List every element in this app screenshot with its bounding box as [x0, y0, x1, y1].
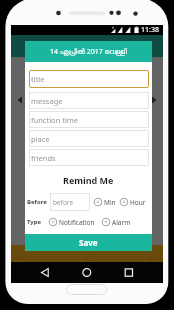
- staticText: Remind Me: [63, 174, 114, 186]
- staticText: title: [31, 74, 45, 84]
- staticText: message: [31, 96, 63, 106]
- button[interactable]: title: [29, 70, 149, 88]
- staticText: 14 ഏപ്രിൽ 2017 വെള്ളി: [50, 47, 127, 57]
- button[interactable]: Min: [93, 197, 116, 207]
- staticText: Notification: [59, 218, 95, 227]
- button[interactable]: Home button: [66, 284, 107, 295]
- button[interactable]: Save: [25, 234, 152, 251]
- button[interactable]: place: [29, 130, 149, 147]
- button[interactable]: Hour: [119, 197, 146, 207]
- button[interactable]: function time: [29, 111, 149, 128]
- staticText: 11:38: [141, 25, 159, 35]
- button[interactable]: message: [29, 92, 149, 109]
- button[interactable]: Alarm: [101, 217, 131, 227]
- staticText: Before: [27, 198, 47, 206]
- staticText: friends: [31, 153, 56, 163]
- staticText: Type: [27, 218, 42, 226]
- staticText: function time: [31, 115, 79, 125]
- staticText: Save: [79, 237, 98, 248]
- staticText: place: [31, 134, 50, 144]
- staticText: before: [53, 198, 74, 207]
- staticText: Min: [104, 198, 116, 207]
- staticText: Alarm: [112, 218, 131, 227]
- button[interactable]: friends: [29, 149, 149, 166]
- staticText: Hour: [130, 198, 146, 207]
- button[interactable]: before: [50, 193, 90, 211]
- button[interactable]: Notification: [48, 217, 95, 227]
- other: Navigation bar: [11, 262, 163, 283]
